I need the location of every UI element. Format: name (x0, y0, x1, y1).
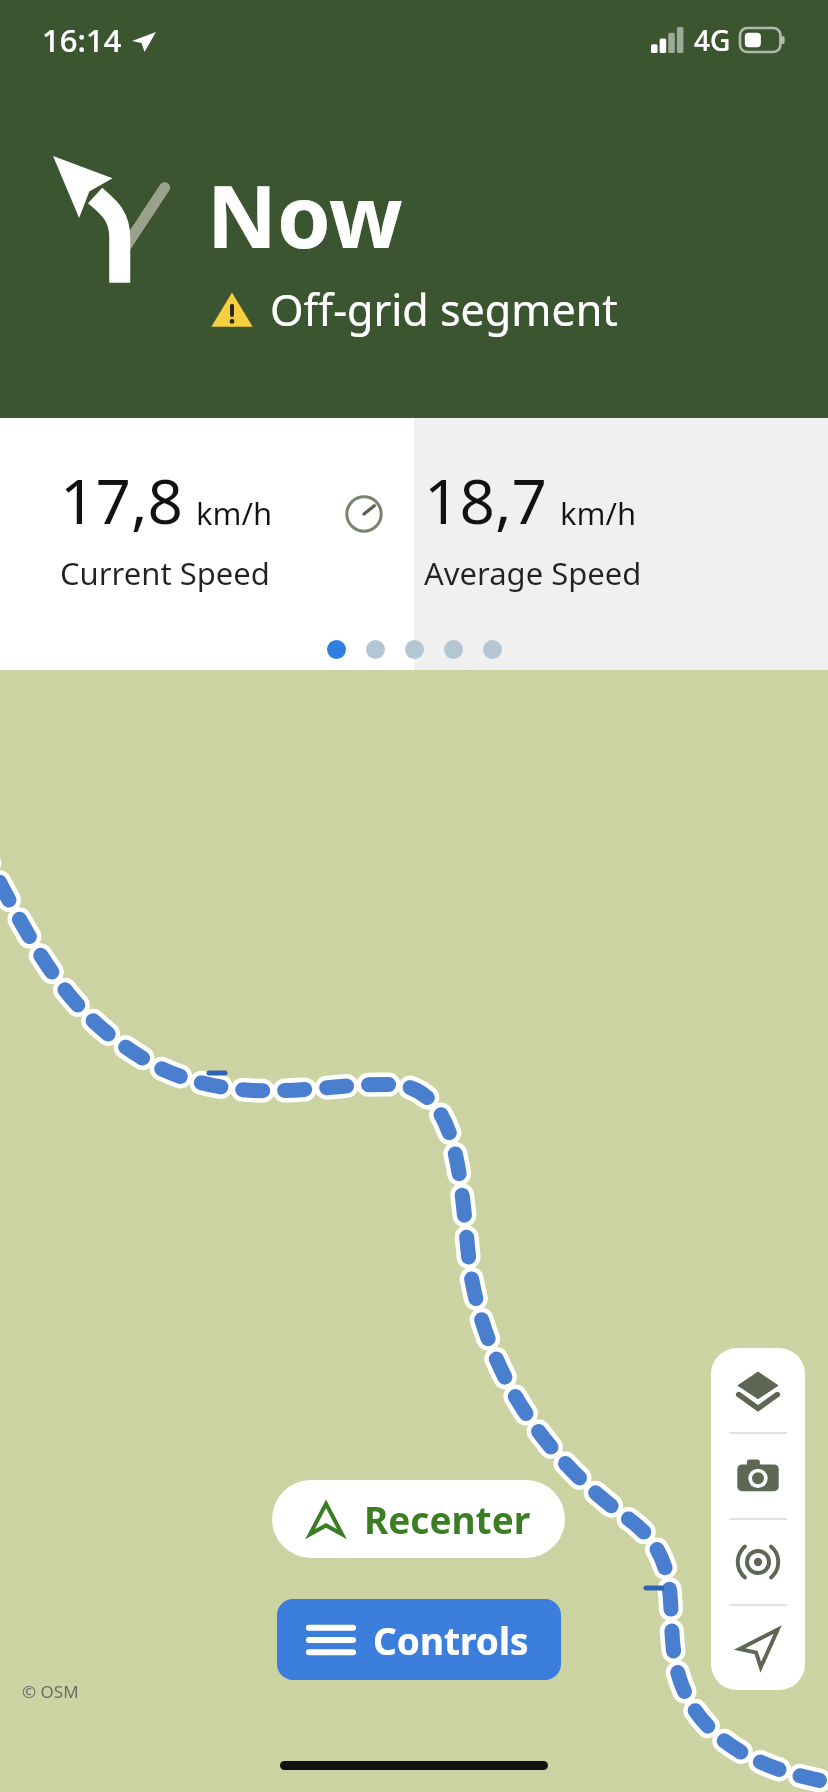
button[interactable]: Recording (711, 1520, 805, 1604)
staticText: © OSM (22, 1680, 79, 1703)
staticText: 4G (694, 21, 731, 59)
staticText: Average Speed (424, 552, 642, 594)
staticText: Now (207, 156, 403, 273)
staticText: 16:14 (42, 19, 122, 61)
button[interactable]: Recenter (272, 1480, 565, 1558)
button[interactable]: Map layers (711, 1348, 805, 1432)
staticText: km/h (196, 492, 273, 534)
staticText: Controls (373, 1615, 529, 1665)
button[interactable]: Navigate (711, 1606, 805, 1690)
staticText: Current Speed (60, 552, 270, 594)
staticText: km/h (560, 492, 637, 534)
staticText: 18,7 (424, 458, 548, 542)
button[interactable]: Camera (711, 1434, 805, 1518)
button[interactable]: Controls (277, 1599, 561, 1680)
staticText: 17,8 (60, 458, 184, 542)
staticText: Off-grid segment (270, 280, 618, 339)
staticText: Recenter (364, 1494, 531, 1544)
